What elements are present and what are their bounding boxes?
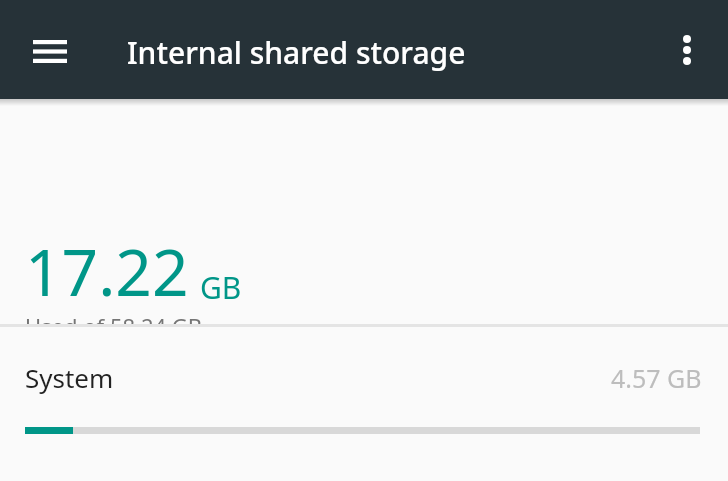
button[interactable]: Navigation menu — [22, 28, 78, 74]
staticText: GB — [200, 267, 242, 308]
button[interactable]: 17.22 — [0, 106, 728, 324]
button[interactable]: More options — [661, 22, 713, 78]
button[interactable]: System — [0, 327, 728, 439]
staticText: Internal shared storage — [127, 32, 466, 73]
staticText: System — [25, 360, 114, 395]
staticText: 4.57 GB — [611, 361, 702, 395]
staticText: 17.22 — [25, 228, 189, 315]
staticText: Used of 58.24 GB — [25, 311, 203, 341]
